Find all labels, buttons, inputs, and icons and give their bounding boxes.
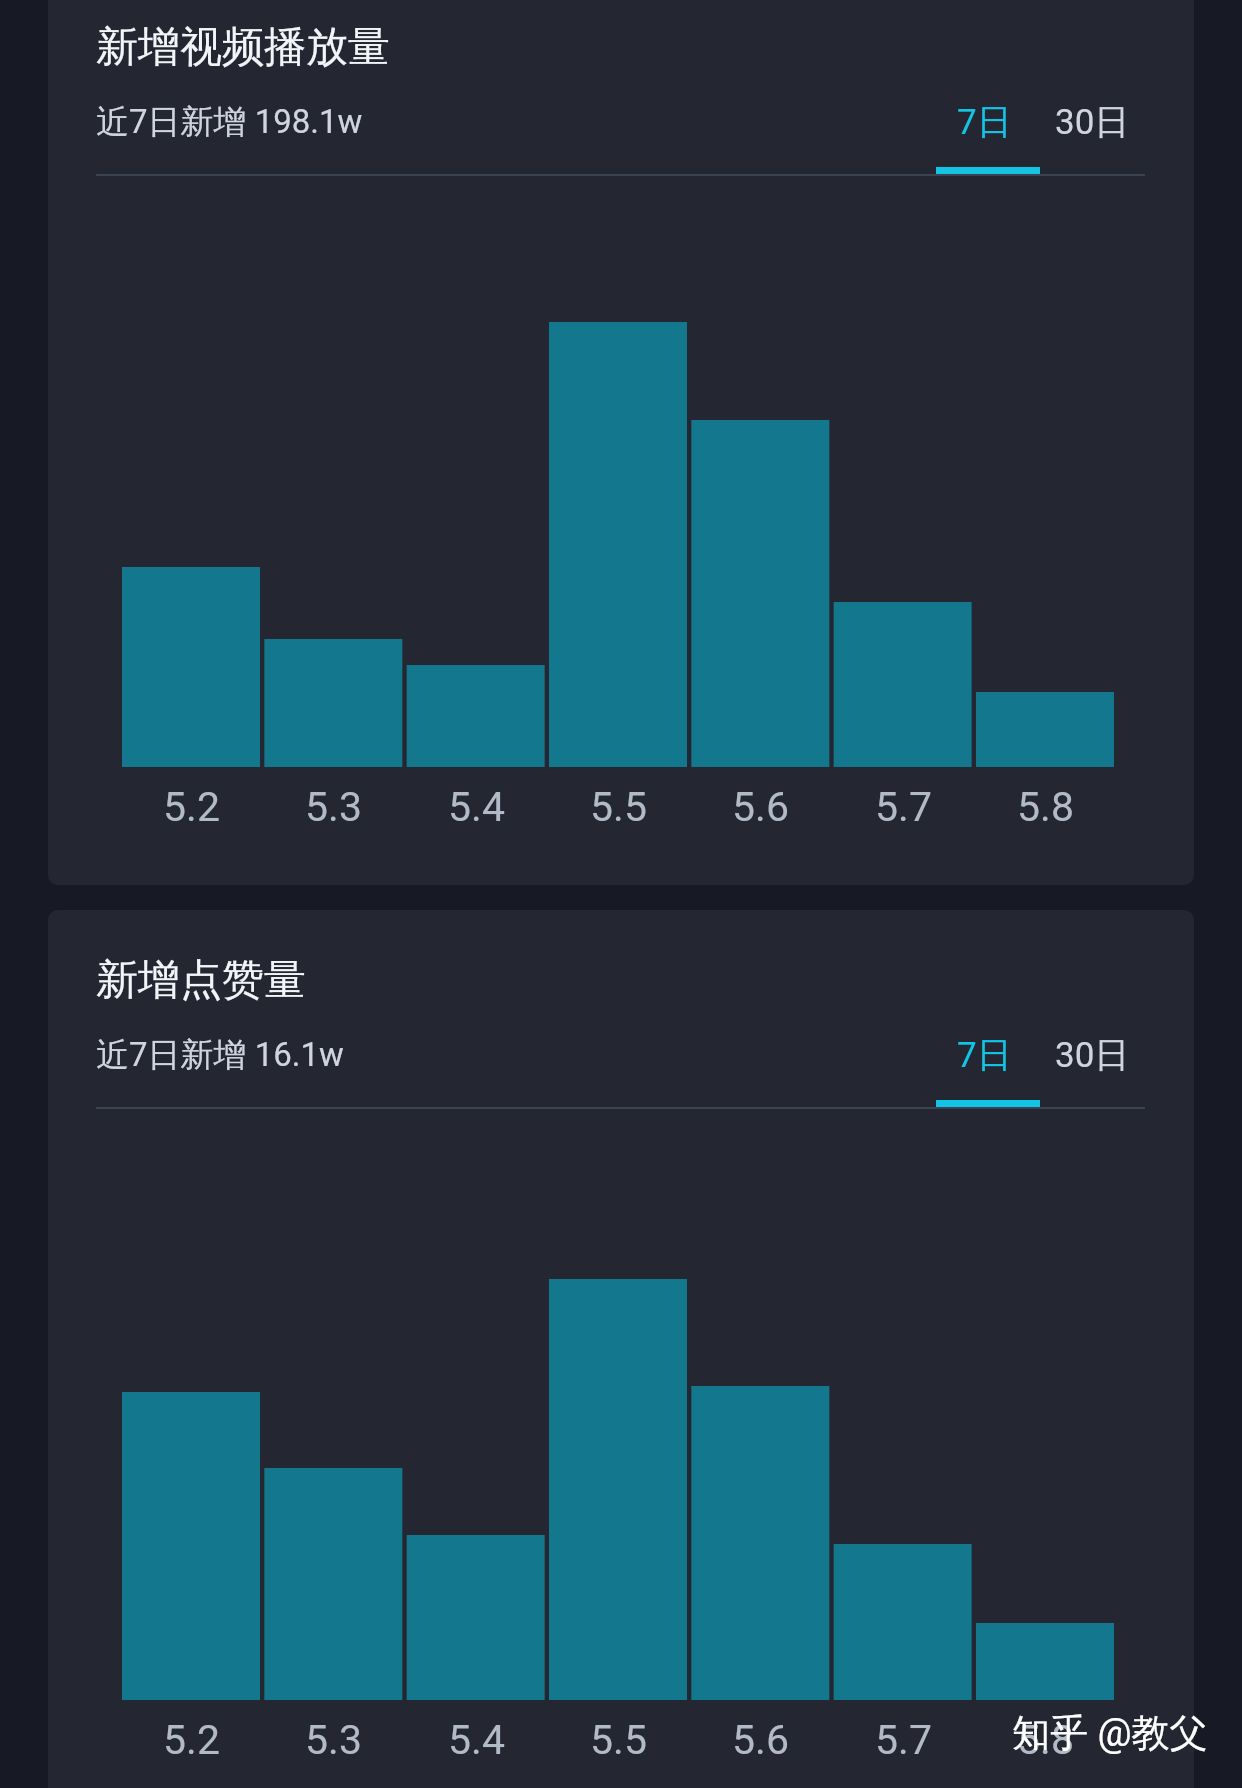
staticText: 5.3	[305, 1716, 362, 1764]
staticText: 5.3	[305, 783, 362, 831]
staticText: 5.5	[590, 1716, 647, 1764]
staticText: 30日	[1055, 1033, 1130, 1077]
button[interactable]: 新增视频播放量	[48, 0, 1194, 885]
staticText: 5.7	[875, 783, 932, 831]
staticText: 5.4	[448, 783, 505, 831]
staticText: 新增视频播放量	[96, 21, 390, 74]
staticText: 7日	[957, 100, 1012, 144]
button[interactable]: 新增点赞量	[48, 910, 1194, 1788]
staticText: 5.6	[732, 1716, 789, 1764]
staticText: 5.7	[875, 1716, 932, 1764]
button[interactable]: 30日	[1040, 98, 1144, 146]
staticText: 5.6	[732, 783, 789, 831]
staticText: 5.5	[590, 783, 647, 831]
button[interactable]: 7日	[932, 1031, 1036, 1079]
staticText: 5.2	[163, 1716, 220, 1764]
staticText: 近7日新增 198.1w	[96, 101, 363, 143]
staticText: 5.4	[448, 1716, 505, 1764]
staticText: 5.8	[1017, 1716, 1074, 1764]
staticText: 5.8	[1017, 783, 1074, 831]
staticText: 知乎 @教父	[1012, 1709, 1208, 1757]
staticText: 30日	[1055, 100, 1130, 144]
button[interactable]: 7日	[932, 98, 1036, 146]
staticText: 新增点赞量	[96, 954, 306, 1007]
staticText: 7日	[957, 1033, 1012, 1077]
staticText: 近7日新增 16.1w	[96, 1034, 344, 1076]
button[interactable]: 30日	[1040, 1031, 1144, 1079]
staticText: 5.2	[163, 783, 220, 831]
